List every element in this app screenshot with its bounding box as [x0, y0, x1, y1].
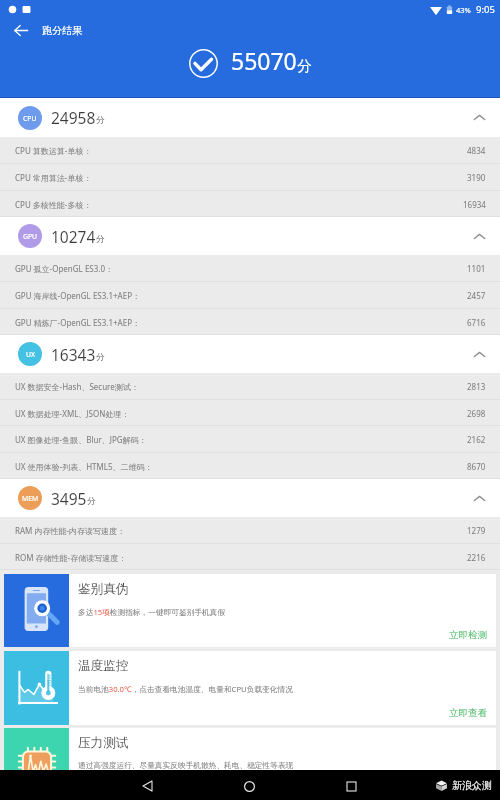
button[interactable]: 立即查看 — [449, 707, 496, 725]
staticText: UX 数据处理-XML、JSON处理： — [15, 408, 130, 419]
staticText: 新浪众测 — [452, 779, 492, 792]
button[interactable]: Back — [133, 772, 161, 800]
staticText: GPU 精炼厂-OpenGL ES3.1+AEP： — [15, 317, 140, 328]
staticText: 43% — [456, 5, 471, 15]
staticText: 2162 — [467, 434, 486, 445]
staticText: 1101 — [467, 263, 486, 274]
staticText: 16343 — [51, 344, 96, 365]
button[interactable]: CPU — [0, 98, 500, 137]
staticText: 当前电池30.0℃，点击查看电池温度、电量和CPU负载变化情况 — [78, 684, 293, 695]
staticText: 分 — [87, 496, 96, 507]
staticText: 2457 — [467, 290, 486, 301]
staticText: 分 — [297, 57, 312, 75]
staticText: 24958 — [51, 107, 96, 128]
staticText: 8670 — [467, 461, 486, 472]
staticText: 2813 — [467, 381, 486, 392]
staticText: 3190 — [467, 172, 486, 183]
staticText: 立即查看 — [449, 707, 487, 719]
staticText: GPU 海岸线-OpenGL ES3.1+AEP： — [15, 290, 140, 301]
staticText: 分 — [96, 352, 105, 363]
staticText: GPU — [23, 232, 38, 241]
staticText: CPU 多核性能-多核： — [15, 199, 92, 210]
staticText: 温度监控 — [78, 658, 129, 674]
staticText: 55070 — [231, 45, 297, 76]
staticText: 分 — [96, 234, 105, 245]
staticText: 10274 — [51, 226, 96, 247]
button[interactable]: 立即检测 — [449, 629, 496, 647]
button[interactable]: Recents — [337, 772, 365, 800]
staticText: 2698 — [467, 408, 486, 419]
button[interactable]: Home — [235, 772, 263, 800]
staticText: UX 数据安全-Hash、Secure测试： — [15, 381, 139, 392]
staticText: 通过高强度运行、尽量真实反映手机散热、耗电、稳定性等表现 — [78, 761, 294, 771]
staticText: 4834 — [467, 145, 486, 156]
staticText: 3495 — [51, 488, 87, 509]
staticText: 16934 — [463, 199, 486, 210]
button[interactable]: GPU — [0, 217, 500, 255]
staticText: MEM — [22, 494, 39, 503]
staticText: 立即检测 — [449, 629, 487, 641]
staticText: GPU 孤立-OpenGL ES3.0： — [15, 263, 114, 274]
staticText: RAM 内存性能-内存读写速度： — [15, 525, 125, 536]
staticText: ROM 存储性能-存储读写速度： — [15, 552, 127, 563]
staticText: 压力测试 — [78, 735, 129, 751]
button[interactable]: Back — [0, 17, 42, 43]
staticText: UX — [26, 350, 35, 359]
staticText: UX 使用体验-列表、HTML5、二维码： — [15, 461, 153, 472]
staticText: UX 图像处理-鱼眼、Blur、JPG解码： — [15, 434, 147, 445]
staticText: 跑分结果 — [42, 24, 82, 37]
staticText: 分 — [96, 115, 105, 126]
staticText: CPU — [23, 114, 37, 123]
staticText: CPU 常用算法-单核： — [15, 172, 92, 183]
button[interactable]: 压力测试 — [4, 728, 496, 800]
staticText: 1279 — [467, 525, 486, 536]
button[interactable]: MEM — [0, 479, 500, 517]
staticText: 多达15项检测指标，一键即可鉴别手机真假 — [78, 607, 226, 618]
button[interactable]: 鉴别真伪 — [4, 574, 496, 647]
button[interactable]: UX — [0, 335, 500, 373]
button[interactable]: 温度监控 — [4, 651, 496, 725]
staticText: 2216 — [467, 552, 486, 563]
staticText: CPU 算数运算-单核： — [15, 145, 92, 156]
staticText: 9:05 — [476, 3, 495, 16]
staticText: 鉴别真伪 — [78, 581, 129, 597]
staticText: 6716 — [467, 317, 486, 328]
